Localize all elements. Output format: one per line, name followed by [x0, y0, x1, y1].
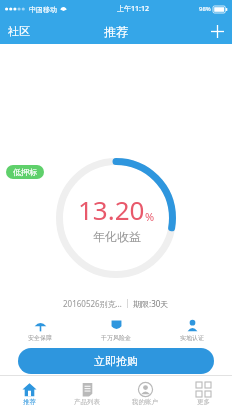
staticText: 立即抢购 [94, 354, 138, 368]
staticText: 实地认证 [180, 334, 204, 342]
staticText: 社区 [8, 24, 30, 38]
staticText: 期限:30天 [133, 298, 169, 309]
staticText: 20160526别克… [63, 298, 122, 309]
staticText: 98% [199, 5, 211, 13]
button[interactable]: Add [203, 22, 232, 41]
button[interactable]: 产品列表 [58, 376, 116, 412]
staticText: 13.20 [78, 192, 145, 227]
staticText: 推荐 [23, 398, 36, 406]
staticText: 推荐 [104, 24, 128, 39]
staticText: 年化收益 [93, 229, 141, 244]
button[interactable]: 更多 [174, 376, 232, 412]
staticText: 更多 [197, 398, 210, 406]
staticText: 中国移动 [29, 5, 57, 14]
button[interactable]: 社区 [0, 20, 38, 42]
button[interactable]: 立即抢购 [18, 348, 214, 374]
button[interactable]: 低押标 [6, 165, 44, 179]
button[interactable]: 推荐 [0, 376, 58, 412]
staticText: 我的账户 [132, 398, 158, 406]
staticText: % [145, 209, 155, 224]
staticText: 千万风险金 [101, 334, 131, 342]
staticText: 上午11:12 [117, 4, 149, 14]
staticText: 低押标 [13, 167, 37, 177]
staticText: 安全保障 [28, 334, 52, 342]
button[interactable]: 我的账户 [116, 376, 174, 412]
staticText: 产品列表 [74, 398, 100, 406]
